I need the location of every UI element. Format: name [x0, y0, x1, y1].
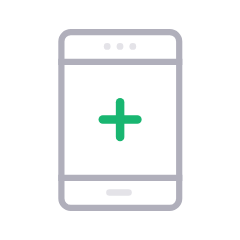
button[interactable]: Add new device [0, 0, 240, 240]
